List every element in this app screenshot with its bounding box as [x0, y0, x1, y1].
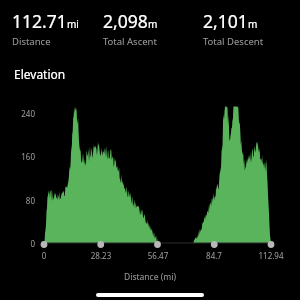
staticText: mi — [67, 17, 79, 31]
staticText: 240 — [0, 108, 35, 119]
staticText: 84.7 — [192, 250, 236, 261]
staticText: 2,098 — [103, 9, 148, 33]
staticText: m — [248, 17, 258, 31]
staticText: Elevation — [14, 66, 66, 82]
staticText: m — [148, 17, 158, 31]
staticText: Distance (mi) — [0, 271, 300, 283]
staticText: 28.23 — [79, 250, 123, 261]
staticText: 112.94 — [249, 250, 293, 261]
staticText: 112.71 — [12, 9, 67, 33]
staticText: 2,101 — [203, 9, 248, 33]
staticText: Total Ascent — [103, 35, 157, 48]
staticText: 160 — [0, 151, 35, 162]
staticText: 0 — [22, 250, 66, 261]
staticText: 0 — [0, 238, 35, 249]
staticText: 56.47 — [136, 250, 180, 261]
button[interactable]: Elevation profile chart — [0, 83, 300, 300]
staticText: Distance — [12, 35, 51, 48]
staticText: Total Descent — [203, 35, 264, 48]
button[interactable]: 112.71 — [12, 9, 103, 48]
button[interactable]: 2,101 — [203, 9, 292, 48]
staticText: 80 — [0, 195, 35, 206]
button[interactable]: 2,098 — [103, 9, 203, 48]
